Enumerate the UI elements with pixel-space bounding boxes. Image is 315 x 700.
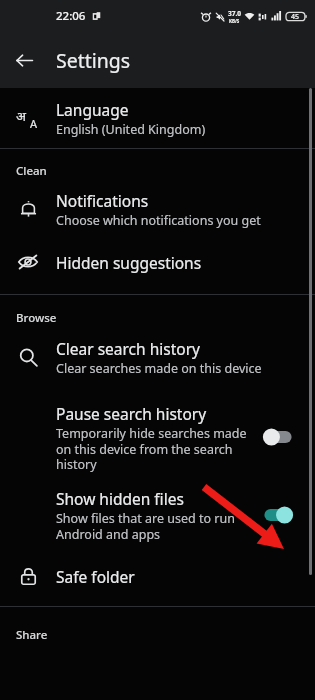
- button[interactable]: Notifications: [0, 181, 315, 238]
- staticText: 37.0: [228, 9, 241, 18]
- button[interactable]: अ: [0, 88, 315, 148]
- staticText: Browse: [16, 310, 57, 326]
- button[interactable]: Clear search history: [0, 328, 315, 386]
- button[interactable]: Show hidden files: [258, 495, 298, 535]
- button[interactable]: Pause search history: [0, 394, 315, 480]
- staticText: Hidden suggestions: [56, 252, 202, 273]
- staticText: Clear searches made on this device: [56, 360, 262, 377]
- staticText: Show hidden files: [56, 488, 184, 509]
- staticText: Safe folder: [56, 566, 135, 587]
- button[interactable]: Hidden suggestions: [0, 238, 315, 286]
- staticText: अ: [16, 107, 26, 125]
- staticText: Choose which notifications you get: [56, 212, 261, 229]
- staticText: Pause search history: [56, 403, 207, 424]
- button[interactable]: Pause search history: [258, 417, 298, 457]
- button[interactable]: Back: [6, 42, 42, 78]
- staticText: Clear search history: [56, 338, 200, 359]
- button[interactable]: Show hidden files: [0, 480, 315, 550]
- button[interactable]: Safe folder: [0, 550, 315, 602]
- staticText: Language: [56, 99, 129, 120]
- staticText: Notifications: [56, 190, 149, 211]
- staticText: KB/S: [229, 18, 240, 24]
- staticText: Temporarily hide searches made on this d…: [56, 425, 250, 472]
- staticText: A: [30, 116, 38, 131]
- staticText: 22:06: [56, 8, 86, 24]
- staticText: Show files that are used to run Android …: [56, 510, 250, 542]
- staticText: Settings: [56, 47, 131, 74]
- staticText: Clean: [16, 163, 47, 179]
- staticText: Share: [16, 627, 48, 643]
- staticText: 45: [291, 12, 300, 22]
- staticText: English (United Kingdom): [56, 121, 206, 138]
